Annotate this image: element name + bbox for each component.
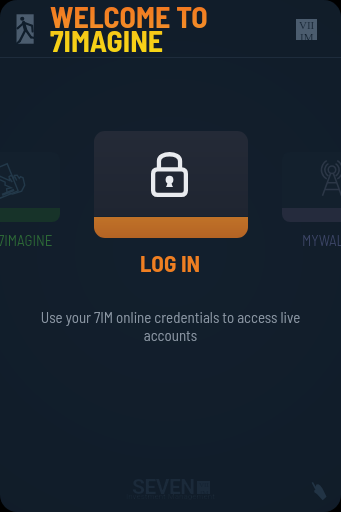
staticText: WELCOME TO bbox=[50, 0, 208, 34]
staticText: SEVEN bbox=[132, 475, 195, 500]
button[interactable]: 7IMAGINE bbox=[0, 152, 60, 249]
button[interactable]: Exit bbox=[12, 12, 46, 46]
staticText: LOG IN bbox=[140, 249, 201, 277]
button[interactable]: MYWALLET bbox=[282, 152, 341, 249]
button[interactable] bbox=[94, 131, 248, 238]
staticText: VII bbox=[299, 19, 315, 31]
staticText: MYWALLET bbox=[302, 231, 341, 249]
button[interactable]: 7IM logo bbox=[291, 14, 321, 44]
staticText: Use your 7IM online credentials to acces… bbox=[22, 308, 319, 344]
staticText: IM bbox=[300, 31, 314, 40]
staticText: 7IMAGINE bbox=[50, 22, 164, 58]
staticText: Investment Management bbox=[126, 492, 215, 501]
staticText: 7IMAGINE bbox=[0, 231, 53, 249]
